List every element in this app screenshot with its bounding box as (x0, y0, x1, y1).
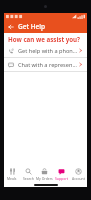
button[interactable]: My Orders (36, 166, 53, 182)
staticText: Support (55, 176, 68, 181)
button[interactable]: Support (53, 166, 70, 182)
staticText: Account (72, 176, 85, 181)
button[interactable]: Search (20, 166, 36, 182)
staticText: Chat with a representative (18, 61, 78, 69)
staticText: Meals (7, 176, 17, 181)
staticText: How can we assist you? (8, 35, 81, 43)
button[interactable]: Chat with a representative (4, 58, 87, 71)
button[interactable]: Account (70, 166, 87, 182)
button[interactable]: Meals (4, 166, 20, 182)
staticText: My Orders (36, 176, 53, 181)
staticText: Search (23, 176, 34, 181)
button[interactable]: Back (4, 20, 18, 33)
staticText: Get help with a phone call (18, 47, 78, 55)
button[interactable]: Get help with a phone call (4, 44, 87, 57)
staticText: Get Help (18, 22, 46, 31)
